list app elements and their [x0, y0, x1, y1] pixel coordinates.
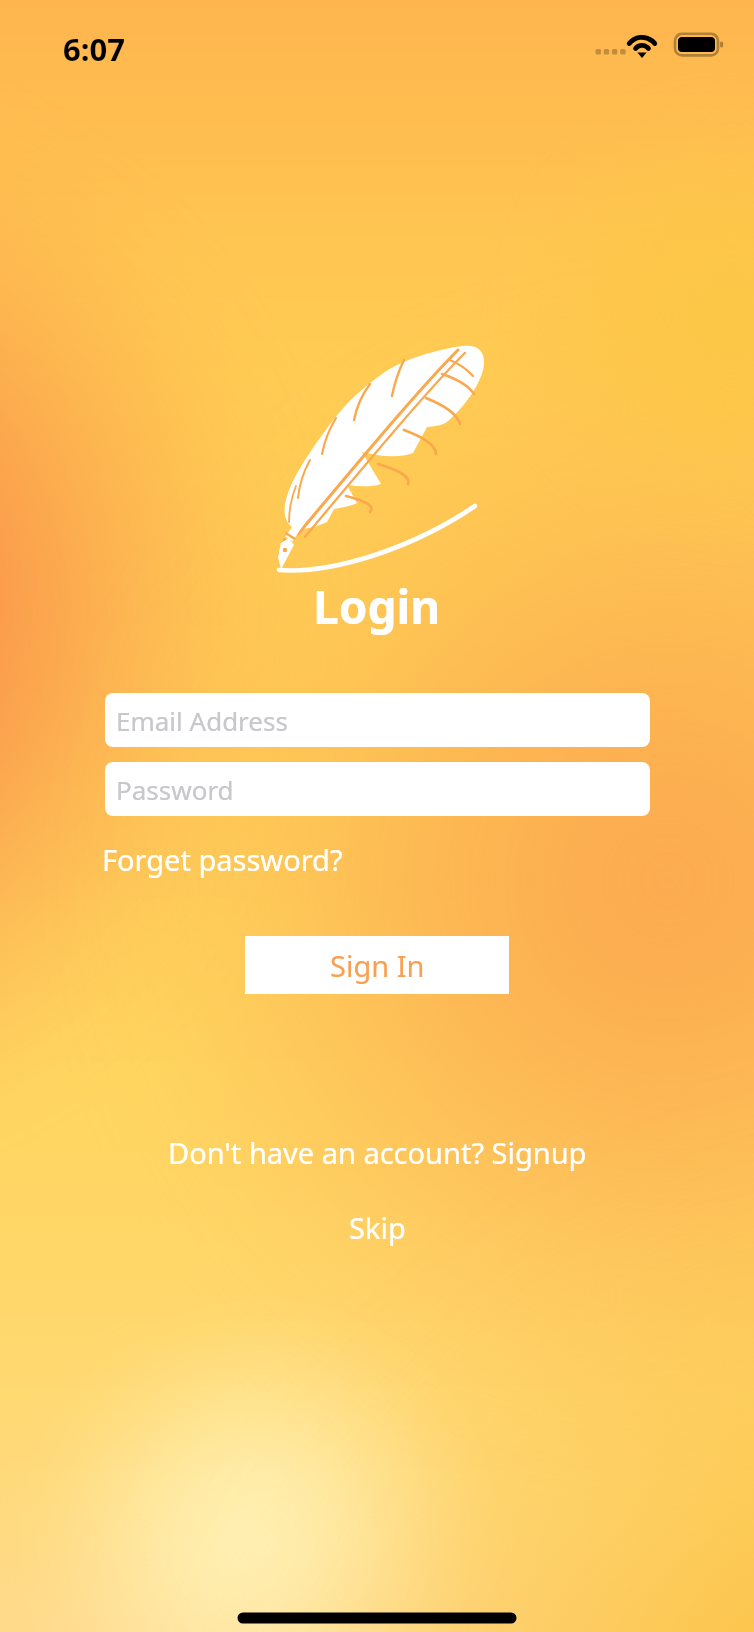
staticText: Login — [313, 575, 441, 638]
staticText: Skip — [349, 1208, 406, 1247]
staticText: Don't have an account? Signup — [168, 1133, 587, 1172]
button[interactable]: Password — [105, 762, 650, 816]
button[interactable]: Skip — [349, 1208, 406, 1247]
staticText: Password — [116, 772, 234, 807]
button[interactable]: Sign In — [245, 936, 509, 994]
button[interactable]: Don't have an account? Signup — [168, 1133, 587, 1172]
button[interactable]: Email Address — [105, 693, 650, 747]
staticText: Sign In — [330, 946, 425, 985]
staticText: 6:07 — [63, 28, 125, 70]
button[interactable]: Forget password? — [102, 840, 343, 879]
staticText: Forget password? — [102, 840, 343, 879]
staticText: Email Address — [116, 703, 288, 738]
